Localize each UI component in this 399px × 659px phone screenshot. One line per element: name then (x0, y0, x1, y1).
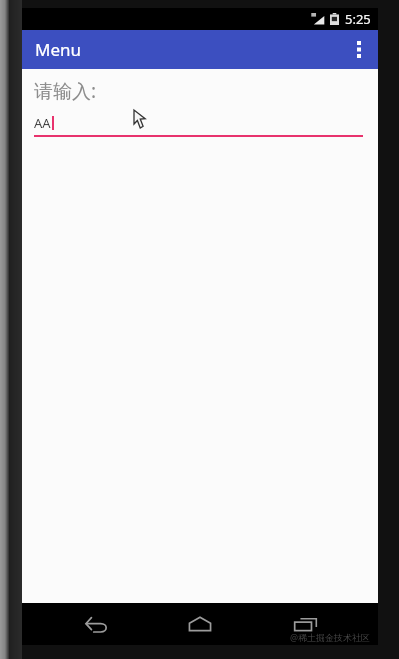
button[interactable]: More options (340, 30, 378, 69)
button[interactable]: Recent apps (274, 603, 336, 645)
staticText: 请输入: (34, 78, 97, 104)
button[interactable]: AA (34, 111, 363, 137)
button[interactable]: Back (65, 603, 127, 645)
staticText: AA (34, 114, 51, 132)
button[interactable]: Home (169, 603, 231, 645)
staticText: Menu (35, 38, 82, 61)
staticText: @稀土掘金技术社区 (290, 631, 371, 643)
staticText: 5:25 (345, 10, 371, 28)
